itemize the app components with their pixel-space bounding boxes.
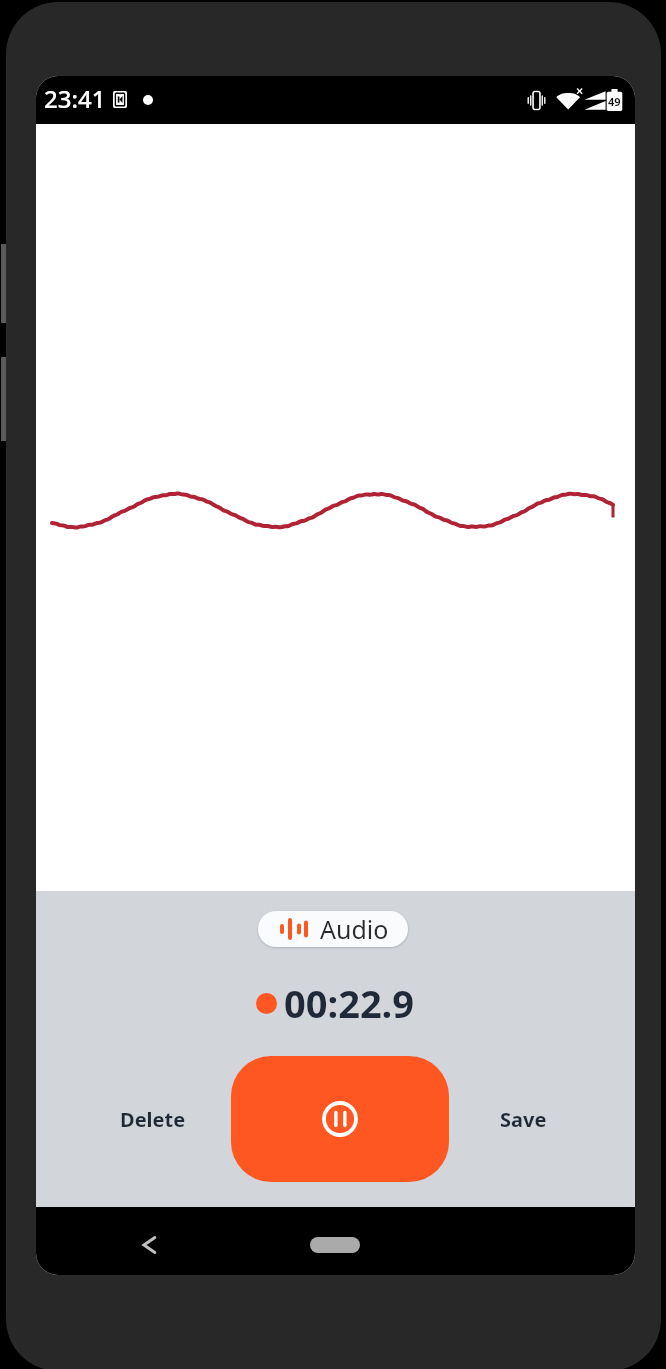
button[interactable]: Save <box>490 1097 556 1141</box>
staticText: 49 <box>608 94 621 109</box>
staticText: 00:22.9 <box>284 977 415 1029</box>
staticText: Audio <box>320 912 389 946</box>
staticText: Save <box>500 1106 547 1133</box>
button[interactable]: Audio <box>258 911 408 947</box>
button[interactable]: Delete <box>113 1097 193 1141</box>
staticText: 23:41 <box>44 82 106 115</box>
button[interactable]: Pause recording <box>231 1056 449 1182</box>
button[interactable]: Back <box>127 1223 171 1267</box>
staticText: Delete <box>120 1106 186 1133</box>
button[interactable]: Home <box>310 1237 360 1253</box>
